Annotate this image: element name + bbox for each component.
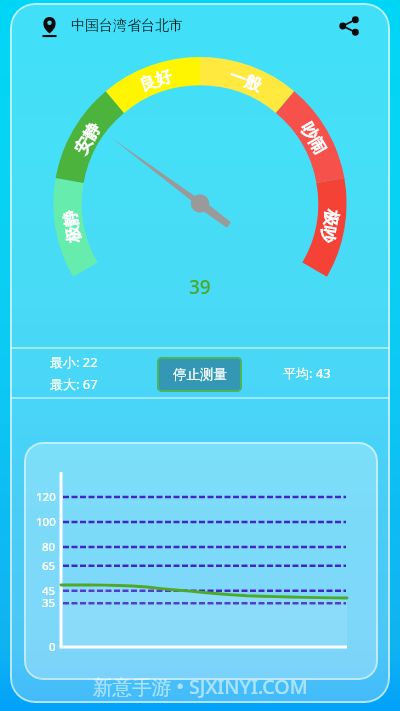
staticText: 39 xyxy=(189,274,211,300)
staticText: 100 xyxy=(36,514,56,530)
staticText: 停止测量 xyxy=(173,366,227,383)
staticText: 极吵 xyxy=(316,208,343,244)
staticText: 安静 xyxy=(70,119,105,158)
staticText: 65 xyxy=(42,558,56,574)
staticText: 新意手游 • SJXINYI.COM xyxy=(93,673,308,700)
staticText: 0 xyxy=(49,639,56,655)
staticText: 平均: 43 xyxy=(283,364,331,382)
staticText: 中国台湾省台北市 xyxy=(71,17,183,35)
staticText: 120 xyxy=(36,489,56,505)
staticText: 良好 xyxy=(136,65,175,96)
button[interactable]: 停止测量 xyxy=(157,357,242,392)
staticText: 80 xyxy=(42,539,56,555)
button[interactable]: Share xyxy=(334,11,364,41)
staticText: 一般 xyxy=(226,65,265,96)
staticText: 最大: 67 xyxy=(50,375,98,393)
staticText: 45 xyxy=(42,583,56,599)
staticText: 吵闹 xyxy=(296,119,331,158)
staticText: 35 xyxy=(42,595,56,611)
staticText: 极静 xyxy=(58,208,85,244)
button[interactable]: Location xyxy=(34,11,64,41)
staticText: 最小: 22 xyxy=(50,353,98,371)
